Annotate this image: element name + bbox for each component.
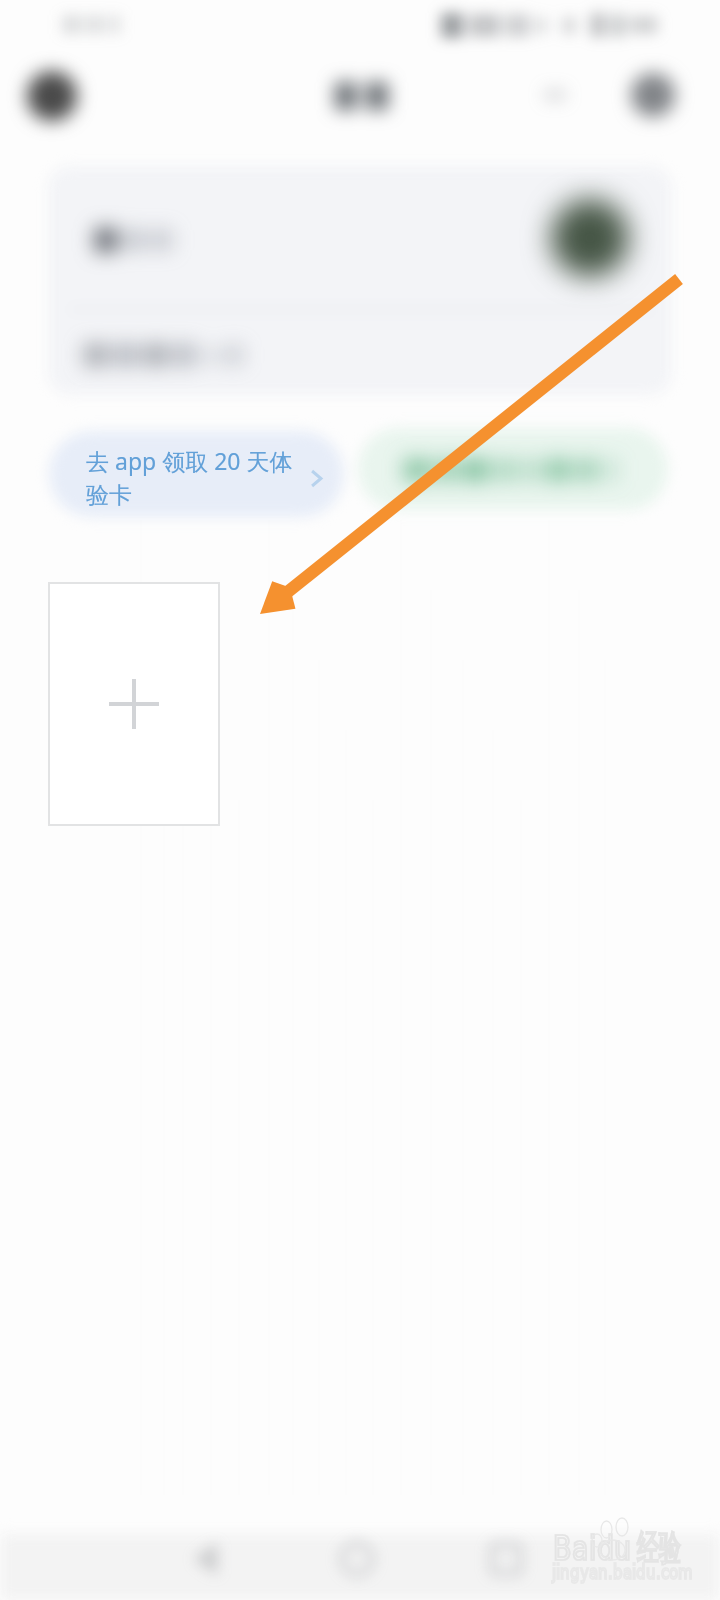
button[interactable]: Account card xyxy=(48,166,672,395)
button[interactable]: Home xyxy=(327,1530,389,1592)
button[interactable]: Minimize xyxy=(523,64,587,128)
button[interactable]: Menu xyxy=(621,64,685,128)
button[interactable]: Back xyxy=(177,1530,239,1592)
button[interactable]: 去 app 领取 20 天体 验卡 xyxy=(49,431,344,517)
button[interactable]: Recent apps xyxy=(475,1530,537,1592)
button[interactable]: Add device xyxy=(48,582,220,826)
button[interactable]: Family share xyxy=(358,428,668,510)
staticText: 去 app 领取 20 天体 验卡 xyxy=(86,445,293,510)
button[interactable]: Profile avatar xyxy=(18,63,86,131)
